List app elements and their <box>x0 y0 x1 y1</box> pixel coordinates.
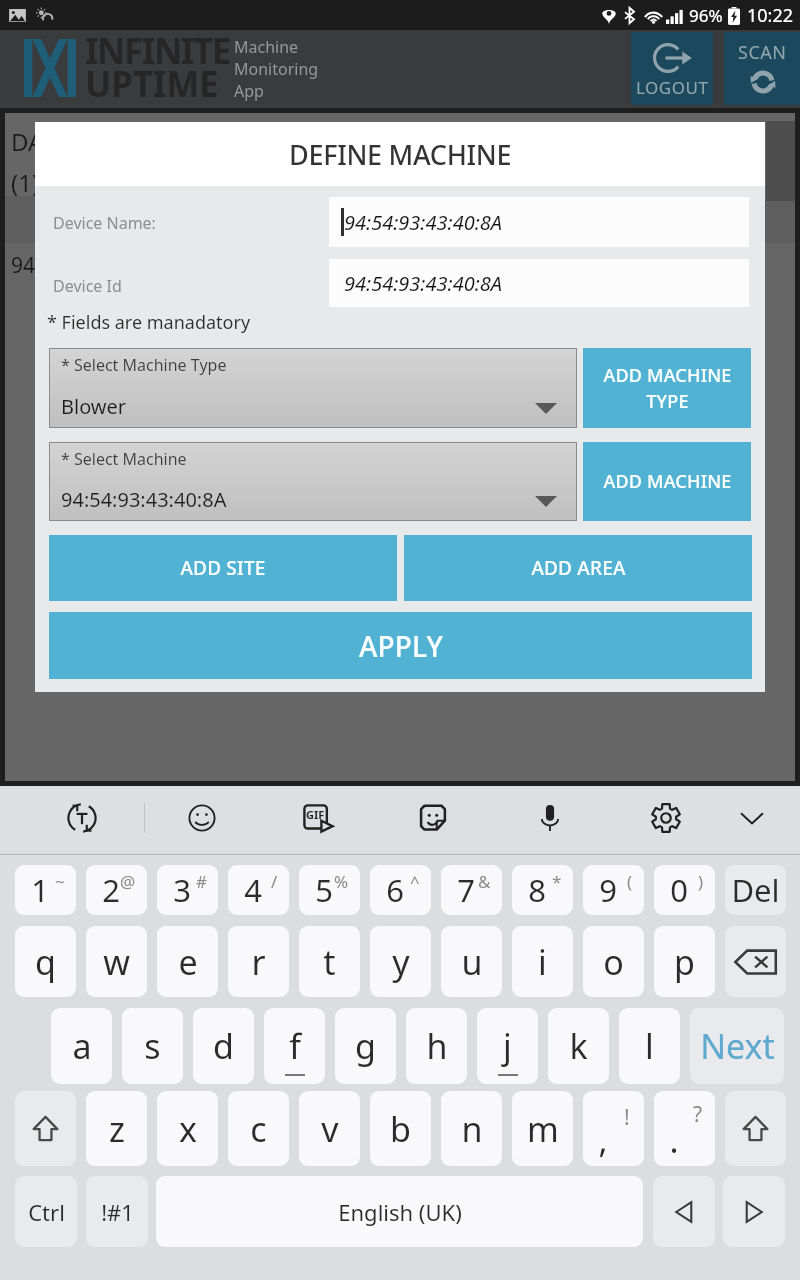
button[interactable]: q <box>15 926 76 997</box>
staticText: 5 <box>315 869 333 911</box>
button[interactable]: j <box>477 1008 538 1084</box>
button[interactable]: h <box>406 1008 467 1084</box>
staticText: ^ <box>410 870 420 893</box>
button[interactable]: a <box>51 1008 112 1084</box>
button[interactable]: o <box>583 926 644 997</box>
button[interactable]: z <box>86 1091 147 1166</box>
button[interactable]: f <box>264 1008 325 1084</box>
button[interactable]: 7 <box>441 865 502 915</box>
button[interactable]: !#1 <box>86 1176 148 1247</box>
button[interactable]: ADD MACHINE TYPE <box>583 348 751 428</box>
button[interactable]: 94:54:93:43:40:8A <box>329 259 749 307</box>
button[interactable]: 5 <box>299 865 360 915</box>
staticText: 2 <box>102 869 120 911</box>
staticText: 9 <box>599 869 617 911</box>
button[interactable]: * Select Machine <box>49 442 577 521</box>
button[interactable]: 4 <box>228 865 289 915</box>
button[interactable]: w <box>86 926 147 997</box>
button[interactable]: Logout <box>631 32 713 105</box>
button[interactable]: 6 <box>370 865 431 915</box>
staticText: GIF <box>306 807 325 822</box>
button[interactable]: Scan <box>724 32 800 105</box>
button[interactable]: u <box>441 926 502 997</box>
button[interactable]: e <box>157 926 218 997</box>
button[interactable]: 0 <box>654 865 715 915</box>
button[interactable]: Translate <box>54 786 110 850</box>
staticText: 94:54:93:43:40:8A <box>344 209 503 236</box>
staticText: x <box>179 1106 197 1152</box>
button[interactable]: v <box>299 1091 360 1166</box>
button[interactable]: Stickers <box>406 786 462 850</box>
button[interactable]: n <box>441 1091 502 1166</box>
button[interactable]: . <box>654 1091 715 1166</box>
button[interactable]: Next <box>690 1008 784 1084</box>
button[interactable]: 8 <box>512 865 573 915</box>
button[interactable]: English (UK) <box>156 1176 643 1247</box>
staticText: y <box>392 939 410 985</box>
button[interactable]: b <box>370 1091 431 1166</box>
button[interactable]: d <box>193 1008 254 1084</box>
staticText: Monitoring <box>234 58 319 80</box>
staticText: n <box>461 1106 483 1152</box>
button[interactable]: ADD SITE <box>49 535 397 601</box>
button[interactable]: Settings <box>638 786 694 850</box>
button[interactable]: Hide keyboard <box>724 786 780 850</box>
staticText: g <box>355 1023 376 1069</box>
button[interactable]: bksp <box>725 926 786 997</box>
staticText: / <box>271 870 278 893</box>
staticText: APPLY <box>359 627 443 665</box>
staticText: !#1 <box>101 1197 134 1227</box>
button[interactable]: k <box>548 1008 609 1084</box>
button[interactable]: Emoji <box>174 786 230 850</box>
staticText: 6 <box>386 869 404 911</box>
staticText: ) <box>698 870 704 893</box>
button[interactable]: 2 <box>86 865 147 915</box>
button[interactable]: ADD MACHINE <box>583 442 751 521</box>
button[interactable]: left <box>653 1176 715 1247</box>
button[interactable]: shift <box>15 1091 76 1166</box>
staticText: ( <box>627 870 633 893</box>
button[interactable]: 3 <box>157 865 218 915</box>
button[interactable]: p <box>654 926 715 997</box>
button[interactable]: l <box>619 1008 680 1084</box>
staticText: 4 <box>244 869 262 911</box>
button[interactable]: right <box>723 1176 785 1247</box>
button[interactable]: x <box>157 1091 218 1166</box>
button[interactable]: g <box>335 1008 396 1084</box>
button[interactable]: Ctrl <box>15 1176 77 1247</box>
button[interactable]: Voice input <box>522 786 578 850</box>
staticText: 8 <box>528 869 546 911</box>
staticText: 94:54:93:43:40:8A <box>11 251 185 280</box>
staticText: q <box>35 939 56 985</box>
button[interactable]: r <box>228 926 289 997</box>
button[interactable]: m <box>512 1091 573 1166</box>
staticText: v <box>321 1106 339 1152</box>
staticText: p <box>674 939 695 985</box>
button[interactable]: c <box>228 1091 289 1166</box>
button[interactable]: Del <box>725 865 786 915</box>
button[interactable]: shift <box>725 1091 786 1166</box>
button[interactable]: * Select Machine Type <box>49 348 577 428</box>
staticText: l <box>645 1023 654 1069</box>
staticText: (1) <box>11 166 40 199</box>
staticText: 7 <box>457 869 475 911</box>
button[interactable]: GIF <box>290 786 346 850</box>
button[interactable]: i <box>512 926 573 997</box>
button[interactable]: t <box>299 926 360 997</box>
staticText: k <box>569 1023 588 1069</box>
button[interactable]: ADD AREA <box>404 535 752 601</box>
staticText: . <box>669 1117 679 1163</box>
button[interactable]: s <box>122 1008 183 1084</box>
staticText: m <box>527 1106 559 1152</box>
staticText: Next <box>700 1023 775 1069</box>
button[interactable]: 9 <box>583 865 644 915</box>
button[interactable]: y <box>370 926 431 997</box>
button[interactable]: APPLY <box>49 612 752 679</box>
staticText: SCAN <box>738 40 787 65</box>
staticText: ADD MACHINE <box>603 469 732 494</box>
staticText: * Fields are manadatory <box>47 310 251 335</box>
staticText: English (UK) <box>338 1197 462 1227</box>
button[interactable]: 1 <box>15 865 76 915</box>
button[interactable]: , <box>583 1091 644 1166</box>
button[interactable]: 94:54:93:43:40:8A <box>329 197 749 247</box>
